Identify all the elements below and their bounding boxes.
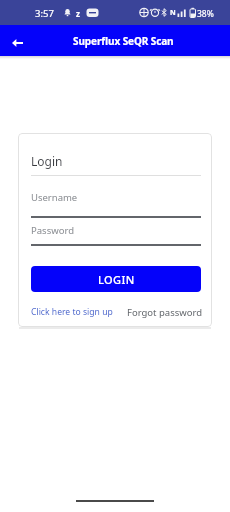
- staticText: N: [170, 8, 176, 18]
- staticText: 3:57: [35, 7, 54, 20]
- staticText: z: [76, 8, 80, 19]
- button[interactable]: Click here to sign up: [31, 306, 113, 318]
- button[interactable]: Forgot password: [127, 306, 203, 319]
- button[interactable]: [0, 25, 34, 56]
- staticText: 38%: [197, 8, 214, 20]
- staticText: Password: [31, 224, 74, 237]
- staticText: Login: [31, 153, 63, 169]
- staticText: Username: [31, 191, 78, 204]
- staticText: LOGIN: [98, 272, 135, 287]
- button[interactable]: LOGIN: [31, 266, 201, 292]
- staticText: Superflux SeQR Scan: [73, 34, 174, 48]
